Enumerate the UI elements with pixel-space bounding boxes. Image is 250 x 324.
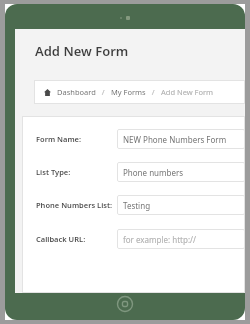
button[interactable]: Dashboard <box>57 87 96 97</box>
staticText: Callback URL: <box>36 234 86 244</box>
button[interactable]: NEW Phone Numbers Form <box>117 129 245 149</box>
staticText: / <box>146 87 161 97</box>
button[interactable]: Testing <box>117 195 245 215</box>
staticText: Phone numbers <box>123 167 184 178</box>
button[interactable]: Home <box>116 295 134 313</box>
button[interactable]: Phone numbers <box>117 162 245 182</box>
staticText: List Type: <box>36 167 71 177</box>
staticText: Testing <box>123 200 151 211</box>
staticText: / <box>96 87 111 97</box>
button[interactable]: for example: http://example.com <box>117 229 245 249</box>
staticText: Dashboard <box>57 87 96 97</box>
staticText: for example: http://example.com <box>123 234 239 245</box>
staticText: Phone Numbers List: <box>36 200 113 210</box>
staticText: Form Name: <box>36 134 82 144</box>
button[interactable]: My Forms <box>111 87 146 97</box>
staticText: Add New Form <box>35 42 129 60</box>
staticText: Add New Form <box>161 87 214 97</box>
staticText: NEW Phone Numbers Form <box>123 134 227 145</box>
staticText: My Forms <box>111 87 146 97</box>
